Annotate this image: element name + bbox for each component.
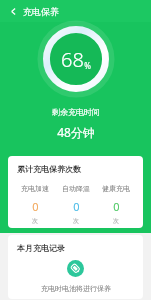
- button[interactable]: 充电加速: [21, 184, 49, 225]
- staticText: 充电保养: [23, 6, 59, 17]
- staticText: 次: [73, 217, 79, 225]
- staticText: 充电时电池将进行保养: [41, 284, 111, 293]
- staticText: 0: [113, 199, 120, 214]
- staticText: 剩余充电时间: [52, 107, 100, 117]
- staticText: 68: [61, 46, 84, 73]
- staticText: 0: [32, 199, 39, 214]
- staticText: 自动降温: [62, 184, 90, 193]
- button[interactable]: 累计充电保养次数: [8, 156, 143, 228]
- staticText: 次: [32, 217, 38, 225]
- button[interactable]: 返回: [5, 3, 21, 19]
- staticText: 0: [73, 199, 80, 214]
- staticText: 本月充电记录: [17, 243, 65, 253]
- other: 电池保养: [67, 260, 84, 277]
- staticText: %: [84, 60, 91, 71]
- button[interactable]: 本月充电记录: [8, 235, 143, 299]
- staticText: 健康充电: [102, 184, 130, 193]
- button[interactable]: 自动降温: [62, 184, 90, 225]
- button[interactable]: 健康充电: [102, 184, 130, 225]
- staticText: 次: [113, 217, 119, 225]
- staticText: 充电加速: [21, 184, 49, 193]
- staticText: 48分钟: [57, 124, 95, 140]
- staticText: 累计充电保养次数: [17, 164, 81, 174]
